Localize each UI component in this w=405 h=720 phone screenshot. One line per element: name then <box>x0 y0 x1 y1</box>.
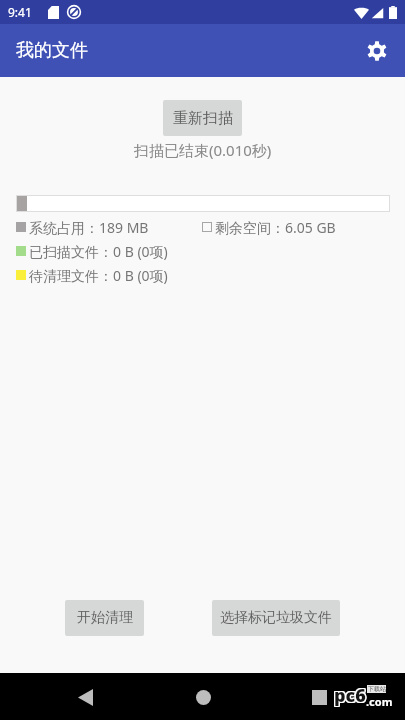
button[interactable]: 开始清理 <box>65 600 144 636</box>
staticText: pc6 <box>334 684 366 709</box>
staticText: 选择标记垃圾文件 <box>220 609 332 627</box>
staticText: pc6 <box>334 683 366 708</box>
staticText: 我的文件 <box>16 39 88 62</box>
button[interactable]: Back <box>68 680 102 714</box>
staticText: 剩余空间：6.05 GB <box>215 218 336 237</box>
staticText: 系统占用：189 MB <box>29 218 149 237</box>
button[interactable]: Settings <box>357 31 397 71</box>
staticText: 下载站 <box>368 685 386 693</box>
button[interactable]: Home <box>186 680 220 714</box>
staticText: pc6 <box>335 682 367 707</box>
staticText: pc6 <box>333 684 365 709</box>
staticText: pc6 <box>333 682 365 707</box>
staticText: pc6 <box>333 683 365 708</box>
staticText: 9:41 <box>8 4 32 20</box>
staticText: 已扫描文件：0 B (0项) <box>29 242 168 261</box>
staticText: .com <box>366 694 393 709</box>
button[interactable]: 选择标记垃圾文件 <box>212 600 340 636</box>
staticText: 重新扫描 <box>173 109 233 128</box>
staticText: pc6 <box>335 684 367 709</box>
staticText: 扫描已结束(0.010秒) <box>134 140 272 160</box>
staticText: 待清理文件：0 B (0项) <box>29 266 168 285</box>
button[interactable]: 重新扫描 <box>163 100 242 136</box>
button[interactable]: Recent apps <box>302 680 336 714</box>
staticText: pc6 <box>335 683 367 708</box>
staticText: 开始清理 <box>77 609 133 627</box>
staticText: pc6 <box>334 682 366 707</box>
